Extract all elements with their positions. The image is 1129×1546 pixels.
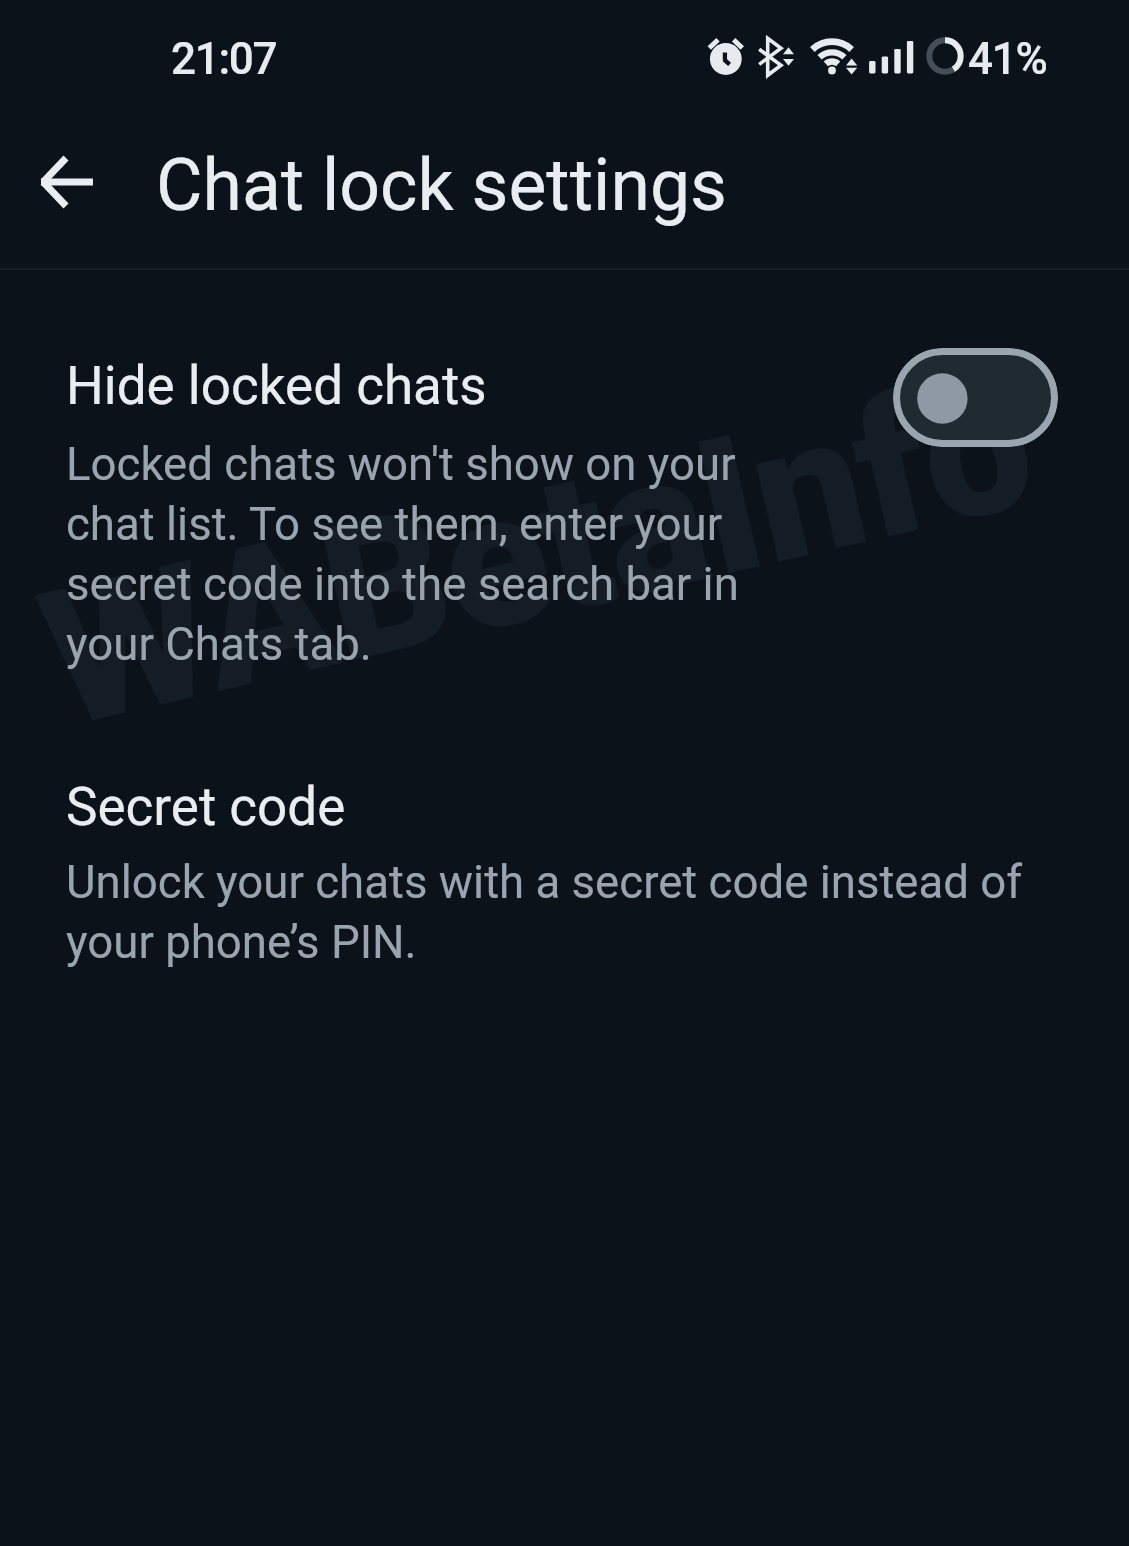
staticText: Chat lock settings [156, 144, 728, 228]
button[interactable]: Back [21, 136, 113, 228]
staticText: Unlock your chats with a secret code ins… [66, 856, 1023, 969]
staticText: Locked chats won't show on your chat lis… [66, 438, 739, 671]
button[interactable]: Hide locked chats [0, 312, 1129, 697]
button[interactable]: Hide locked chats [893, 348, 1058, 447]
staticText: 41% [968, 33, 1047, 85]
staticText: Secret code [66, 776, 346, 838]
staticText: 21:07 [171, 33, 277, 85]
button[interactable]: Secret code [0, 752, 1129, 1000]
staticText: Hide locked chats [66, 355, 487, 417]
staticText: WABetaInfo [23, 330, 1051, 773]
